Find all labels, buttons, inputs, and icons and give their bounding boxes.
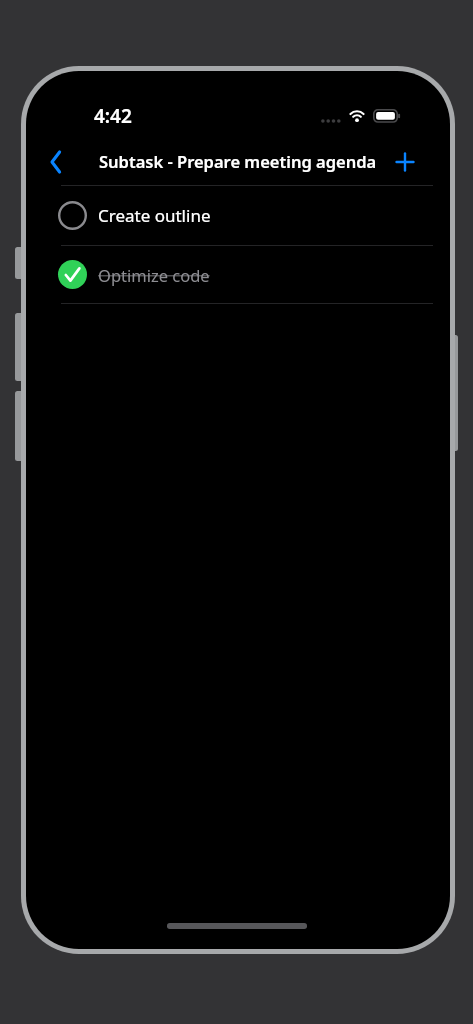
staticText: Optimize code — [98, 264, 210, 286]
staticText: Subtask - Prepare meeting agenda — [99, 150, 377, 172]
button[interactable] — [389, 146, 421, 178]
button[interactable]: Create outline — [26, 185, 450, 245]
staticText: 4:42 — [94, 103, 132, 129]
button[interactable]: Optimize code — [26, 246, 450, 303]
staticText: Create outline — [98, 204, 211, 227]
button[interactable] — [40, 145, 72, 179]
